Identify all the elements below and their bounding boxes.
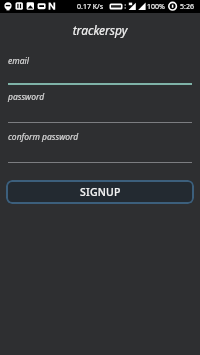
staticText: SIGNUP — [80, 185, 121, 199]
staticText: conform password — [8, 131, 79, 143]
staticText: email — [8, 55, 29, 67]
staticText: 0.17 K/s — [77, 2, 103, 12]
staticText: trackerspy — [0, 22, 200, 38]
button[interactable]: SIGNUP — [6, 180, 194, 204]
staticText: 5:26 — [180, 2, 194, 12]
staticText: 100% — [147, 2, 165, 12]
staticText: password — [8, 91, 45, 103]
